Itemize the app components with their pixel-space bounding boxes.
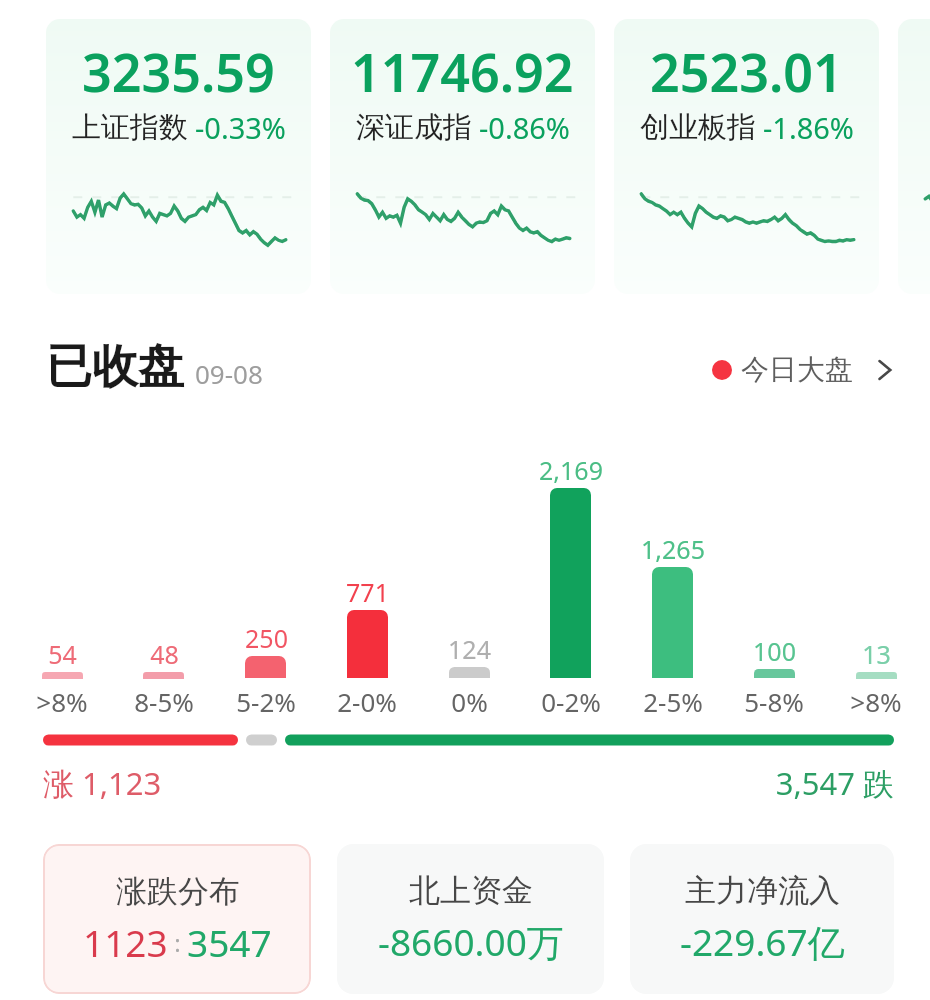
- staticText: 771: [346, 575, 389, 609]
- staticText: -1.86%: [763, 108, 854, 147]
- staticText: 5-2%: [236, 684, 296, 719]
- staticText: 250: [245, 621, 288, 655]
- staticText: 2-0%: [337, 684, 397, 719]
- button[interactable]: >8% 13: [826, 440, 926, 712]
- staticText: -8660.00万: [378, 916, 564, 967]
- button[interactable]: 5-8% 100: [724, 440, 824, 712]
- button[interactable]: 2-5% 1,265: [623, 440, 723, 712]
- staticText: 3235.59: [82, 36, 275, 107]
- staticText: -229.67亿: [680, 916, 845, 967]
- button[interactable]: 1468.54: [898, 19, 930, 294]
- button[interactable]: 5-2% 250: [216, 440, 316, 712]
- staticText: 0-2%: [541, 684, 601, 719]
- staticText: 0%: [451, 684, 488, 719]
- staticText: 11746.92: [351, 36, 574, 107]
- staticText: 已收盘: [46, 338, 184, 396]
- staticText: 1123: [83, 917, 168, 967]
- button[interactable]: 涨跌比例 1123 比 3547: [43, 722, 894, 758]
- staticText: 3,547 跌: [644, 762, 894, 804]
- staticText: 今日大盘: [741, 352, 853, 387]
- staticText: 8-5%: [134, 684, 194, 719]
- staticText: 5-8%: [744, 684, 804, 719]
- button[interactable]: 8-5% 48: [114, 440, 214, 712]
- staticText: 上证指数: [72, 109, 188, 146]
- staticText: 13: [862, 637, 891, 671]
- button[interactable]: 2523.01: [614, 19, 879, 294]
- staticText: 涨跌分布: [116, 872, 240, 911]
- staticText: 54: [48, 637, 77, 671]
- staticText: 3547: [187, 917, 272, 967]
- staticText: 2,169: [539, 453, 603, 487]
- staticText: 北上资金: [409, 871, 533, 910]
- button[interactable]: 今日大盘: [706, 344, 903, 395]
- staticText: >8%: [850, 684, 902, 719]
- button[interactable]: 涨跌分布: [43, 844, 311, 994]
- staticText: 124: [448, 632, 491, 666]
- button[interactable]: 2-0% 771: [317, 440, 417, 712]
- staticText: 创业板指: [640, 109, 756, 146]
- staticText: 48: [150, 637, 179, 671]
- button[interactable]: 主力净流入: [630, 844, 894, 994]
- button[interactable]: 北上资金: [337, 844, 604, 994]
- staticText: >8%: [36, 684, 88, 719]
- staticText: 1,265: [641, 532, 705, 566]
- button[interactable]: >8% 54: [12, 440, 112, 712]
- staticText: 2-5%: [643, 684, 703, 719]
- button[interactable]: 0-2% 2,169: [521, 440, 621, 712]
- button[interactable]: 0% 124: [419, 440, 519, 712]
- staticText: 深证成指: [356, 109, 472, 146]
- staticText: 2523.01: [650, 36, 843, 107]
- staticText: :: [168, 926, 187, 959]
- staticText: -0.86%: [479, 108, 570, 147]
- staticText: -0.33%: [195, 108, 286, 147]
- staticText: 09-08: [195, 356, 263, 391]
- button[interactable]: 11746.92: [330, 19, 595, 294]
- staticText: 100: [753, 634, 796, 668]
- staticText: 主力净流入: [685, 871, 840, 910]
- button[interactable]: 3235.59: [46, 19, 311, 294]
- staticText: 涨 1,123: [43, 762, 162, 804]
